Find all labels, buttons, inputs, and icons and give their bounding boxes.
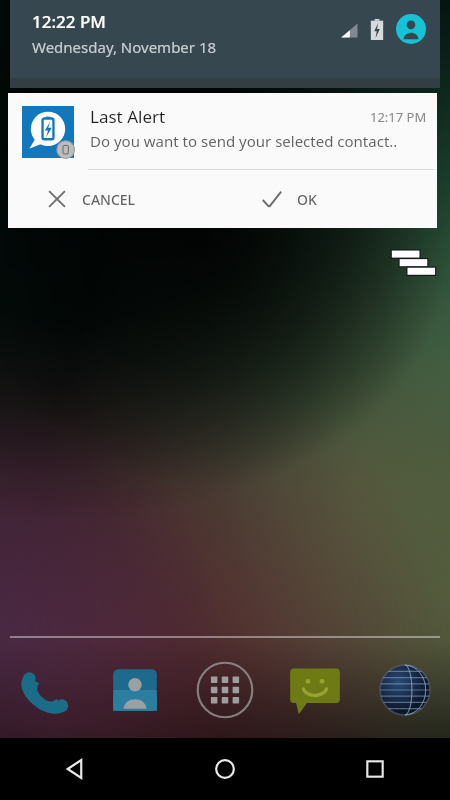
button[interactable]: CANCEL xyxy=(8,170,222,228)
button[interactable]: Notification settings xyxy=(390,248,436,280)
staticText: OK xyxy=(297,190,317,209)
button[interactable]: Phone xyxy=(0,645,90,735)
staticText: Wednesday, November 18 xyxy=(32,37,217,57)
staticText: Do you want to send your selected contac… xyxy=(90,131,398,151)
button[interactable]: Browser xyxy=(360,645,450,735)
staticText: Last Alert xyxy=(90,105,370,128)
button[interactable]: Apps xyxy=(180,645,270,735)
button[interactable]: Messaging xyxy=(270,645,360,735)
button[interactable]: Contacts xyxy=(90,645,180,735)
button[interactable]: Recents xyxy=(300,738,450,800)
staticText: CANCEL xyxy=(82,190,136,209)
button[interactable]: Last Alert app icon xyxy=(8,93,437,169)
staticText: 12:22 PM xyxy=(32,10,106,33)
button[interactable]: Last Alert app icon xyxy=(22,106,74,158)
button[interactable]: User xyxy=(396,14,426,44)
button[interactable]: Home xyxy=(150,738,300,800)
button[interactable]: OK xyxy=(222,170,437,228)
button[interactable]: Back xyxy=(0,738,150,800)
staticText: 12:17 PM xyxy=(370,108,427,126)
